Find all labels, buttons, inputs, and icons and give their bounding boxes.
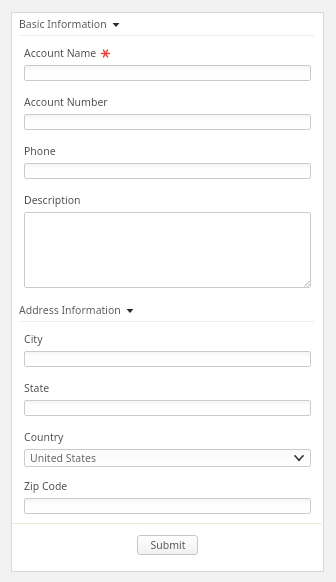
button[interactable] xyxy=(24,163,311,179)
button[interactable]: United States xyxy=(24,449,311,467)
button[interactable] xyxy=(24,212,311,288)
button[interactable]: Address Information xyxy=(11,298,324,321)
button[interactable] xyxy=(24,351,311,367)
staticText: Phone xyxy=(24,144,56,158)
staticText: United States xyxy=(30,451,96,465)
staticText: Account Number xyxy=(24,95,108,109)
staticText: Address Information xyxy=(19,303,121,317)
button[interactable] xyxy=(24,65,311,81)
staticText: Country xyxy=(24,430,64,444)
staticText: Account Name xyxy=(24,46,97,60)
button[interactable]: Basic Information xyxy=(11,12,324,35)
button[interactable] xyxy=(24,400,311,416)
staticText: Description xyxy=(24,193,81,207)
staticText: City xyxy=(24,332,43,346)
button[interactable]: Submit xyxy=(137,535,198,555)
button[interactable] xyxy=(24,498,311,514)
staticText: Submit xyxy=(150,538,186,552)
staticText: Zip Code xyxy=(24,479,68,493)
button[interactable] xyxy=(24,114,311,130)
staticText: Basic Information xyxy=(19,17,107,31)
staticText: State xyxy=(24,381,50,395)
